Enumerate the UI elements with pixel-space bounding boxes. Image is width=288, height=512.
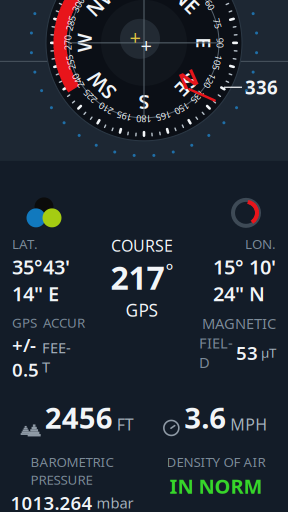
staticText: 53 (236, 340, 258, 365)
staticText: 35°43' 14" E (12, 254, 70, 307)
staticText: µT (261, 344, 276, 361)
staticText: ° (165, 258, 173, 283)
staticText: LAT. (12, 235, 38, 253)
staticText: FIELD (199, 333, 233, 372)
staticText: FT (117, 414, 134, 435)
staticText: +/- 0.5 (12, 332, 39, 382)
staticText: GPS (125, 299, 158, 322)
staticText: 1013.264 (10, 490, 92, 512)
staticText: LON. (245, 235, 276, 253)
staticText: GPS ACCUR (12, 314, 85, 331)
staticText: 2456 (45, 398, 113, 437)
staticText: 15° 10' 24" N (213, 254, 276, 307)
staticText: MAGNETIC (202, 314, 276, 333)
staticText: BAROMETRIC PRESSURE (30, 453, 113, 488)
staticText: MPH (230, 414, 267, 435)
staticText: 3.6 (184, 398, 226, 437)
staticText: COURSE (111, 235, 173, 256)
staticText: mbar (96, 493, 133, 512)
staticText: + (129, 24, 140, 50)
staticText: 336 (245, 75, 278, 100)
staticText: N (179, 64, 197, 94)
staticText: 217 (110, 256, 164, 299)
staticText: IN NORM (169, 473, 262, 499)
staticText: FEET (42, 338, 71, 377)
staticText: + (140, 32, 151, 58)
staticText: DENSITY OF AIR (166, 453, 265, 471)
